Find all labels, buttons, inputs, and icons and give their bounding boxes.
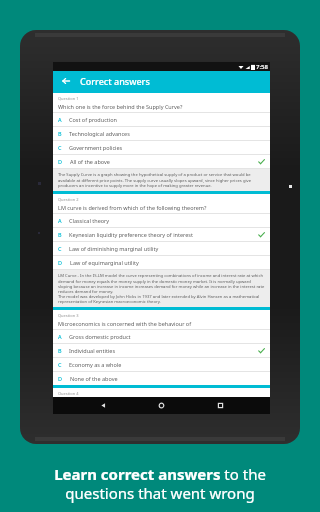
staticText: 7:58 bbox=[256, 63, 268, 71]
button[interactable]: B bbox=[53, 127, 270, 140]
staticText: Which one is the force behind the Supply… bbox=[58, 103, 183, 110]
staticText: Question 2 bbox=[58, 197, 79, 202]
staticText: Classical theory bbox=[69, 217, 265, 224]
button[interactable]: D bbox=[53, 372, 270, 385]
staticText: A bbox=[58, 217, 62, 224]
staticText: A bbox=[58, 116, 62, 123]
button[interactable]: C bbox=[53, 242, 270, 255]
button[interactable]: Home bbox=[153, 397, 170, 414]
staticText: Question 3 bbox=[58, 313, 79, 318]
staticText: Keynesian liquidity preference theory of… bbox=[69, 231, 258, 238]
staticText: D bbox=[58, 259, 63, 266]
button[interactable]: C bbox=[53, 141, 270, 154]
staticText: LM curve is derived from which of the fo… bbox=[58, 204, 207, 211]
staticText: The Supply Curve is a graph showing the … bbox=[58, 172, 265, 188]
staticText: Law of equimarginal utility bbox=[70, 259, 265, 266]
button[interactable]: A bbox=[53, 113, 270, 126]
button[interactable]: C bbox=[53, 358, 270, 371]
staticText: Individual entities bbox=[69, 347, 258, 354]
staticText: Economy as a whole bbox=[69, 361, 265, 368]
staticText: C bbox=[58, 245, 62, 252]
button[interactable]: Back bbox=[95, 397, 112, 414]
staticText: LM Curve - In the IS-LM model the curve … bbox=[58, 273, 265, 304]
button[interactable]: Recent apps bbox=[212, 397, 229, 414]
button[interactable]: D bbox=[53, 256, 270, 269]
staticText: A bbox=[58, 333, 62, 340]
staticText: None of the above bbox=[70, 375, 265, 382]
staticText: C bbox=[58, 361, 62, 368]
staticText: B bbox=[58, 231, 62, 238]
staticText: Correct answers bbox=[80, 75, 150, 87]
button[interactable]: B bbox=[53, 228, 270, 241]
staticText: Microeconomics is concerned with the beh… bbox=[58, 320, 192, 327]
staticText: B bbox=[58, 130, 62, 137]
staticText: B bbox=[58, 347, 62, 354]
button[interactable]: A bbox=[53, 330, 270, 343]
staticText: Learn correct answers to the questions t… bbox=[54, 464, 266, 503]
staticText: C bbox=[58, 144, 62, 151]
button[interactable]: Back bbox=[59, 74, 73, 88]
staticText: D bbox=[58, 158, 63, 165]
button[interactable]: B bbox=[53, 344, 270, 357]
staticText: All of the above bbox=[70, 158, 258, 165]
staticText: Cost of production bbox=[69, 116, 265, 123]
button[interactable]: A bbox=[53, 214, 270, 227]
button[interactable]: D bbox=[53, 155, 270, 168]
staticText: Law of diminishing marginal utility bbox=[69, 245, 265, 252]
staticText: Technological advances bbox=[69, 130, 265, 137]
staticText: Government policies bbox=[69, 144, 265, 151]
staticText: Question 1 bbox=[58, 96, 79, 101]
staticText: Gross domestic product bbox=[69, 333, 265, 340]
staticText: D bbox=[58, 375, 63, 382]
staticText: Question 4 bbox=[58, 391, 79, 395]
